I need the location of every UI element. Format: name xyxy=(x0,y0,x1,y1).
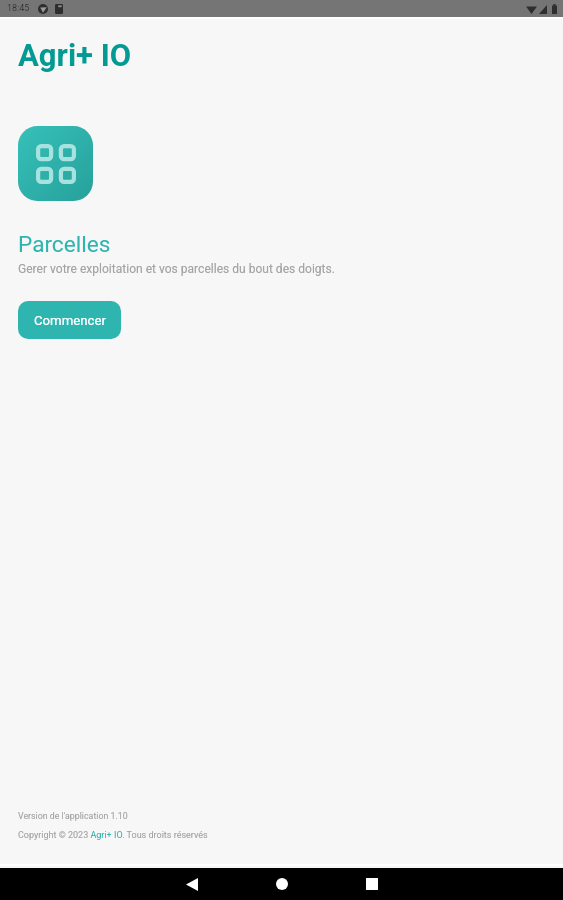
button[interactable]: Back xyxy=(175,868,208,900)
button[interactable]: Commencer xyxy=(18,301,121,339)
staticText: 18:45 xyxy=(7,3,30,14)
staticText: Parcelles xyxy=(18,231,111,257)
staticText: Copyright © 2023 Agri+ IO. Tous droits r… xyxy=(18,830,208,841)
button[interactable]: Home xyxy=(265,868,298,900)
button[interactable]: Parcelles xyxy=(18,126,93,201)
button[interactable]: Recent apps xyxy=(355,868,388,900)
staticText: Commencer xyxy=(34,313,106,328)
staticText: Gerer votre exploitation et vos parcelle… xyxy=(18,262,335,276)
staticText: Agri+ IO xyxy=(18,37,132,73)
staticText: Version de l'application 1.10 xyxy=(18,811,128,821)
